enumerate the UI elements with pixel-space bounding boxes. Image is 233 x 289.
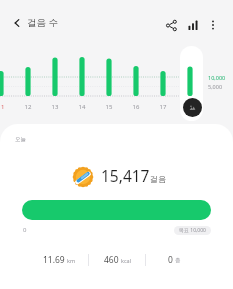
staticText: kcal <box>121 257 132 264</box>
staticText: 16 <box>128 103 144 111</box>
staticText: 14 <box>74 103 90 111</box>
staticText: 15,417 <box>101 165 150 186</box>
staticText: 층 <box>175 257 181 264</box>
staticText: 17 <box>155 103 171 111</box>
button[interactable]: 목표 10,000 <box>174 226 211 235</box>
staticText: 12 <box>20 103 36 111</box>
button[interactable]: 0 <box>146 250 203 270</box>
staticText: 11.69 <box>43 254 65 266</box>
button[interactable]: History <box>180 12 206 38</box>
staticText: 18 <box>182 103 198 111</box>
staticText: 0 <box>23 226 27 234</box>
button[interactable]: 11.69 <box>31 250 88 270</box>
staticText: 0 <box>168 254 173 266</box>
staticText: 15 <box>101 103 117 111</box>
button[interactable]: More options <box>200 12 226 38</box>
staticText: 460 <box>104 254 119 266</box>
staticText: 13 <box>47 103 63 111</box>
staticText: 10,000 <box>208 74 226 81</box>
staticText: 걸음 수 <box>27 16 58 29</box>
staticText: 목표 10,000 <box>179 227 206 234</box>
button[interactable]: 460 <box>89 250 146 270</box>
button[interactable] <box>22 200 211 220</box>
staticText: 5,000 <box>208 83 223 90</box>
button[interactable]: Walking detail <box>183 98 202 117</box>
staticText: 오늘 <box>15 136 26 143</box>
staticText: 걸음 <box>150 174 166 184</box>
staticText: km <box>67 257 76 264</box>
button[interactable]: Back <box>4 10 30 36</box>
button[interactable]: Share <box>158 12 184 38</box>
staticText: 11 <box>0 103 9 111</box>
